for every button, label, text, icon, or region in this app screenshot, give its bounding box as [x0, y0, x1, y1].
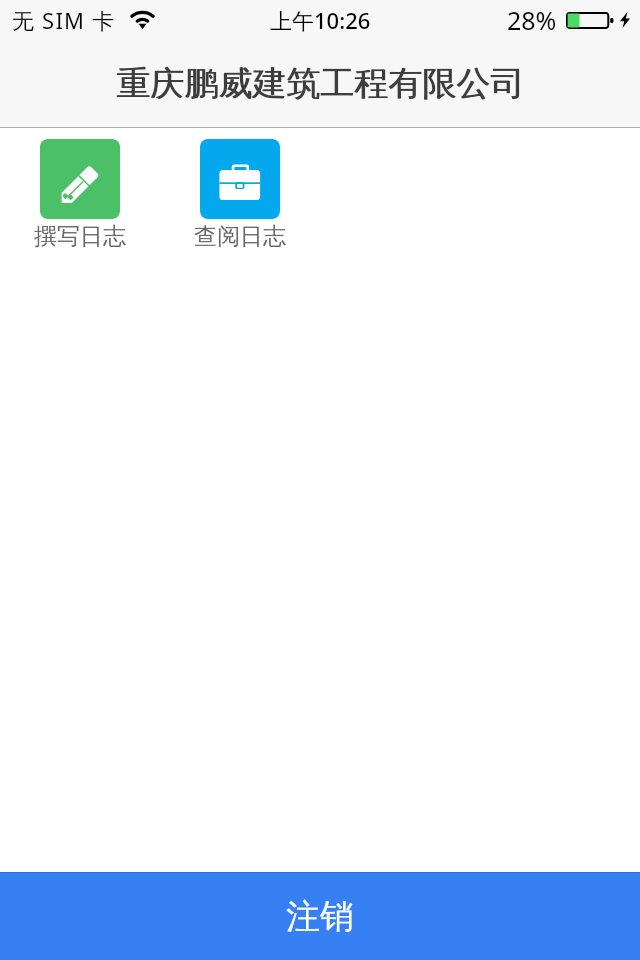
other: 撰写日志 — [40, 139, 120, 219]
staticText: 重庆鹏威建筑工程有限公司 — [116, 62, 524, 105]
staticText: 查阅日志 — [194, 222, 286, 251]
button[interactable]: 查阅日志 — [160, 139, 320, 251]
staticText: 撰写日志 — [34, 222, 126, 251]
staticText: 上午10:26 — [270, 5, 371, 35]
button[interactable]: 注销 — [0, 872, 640, 960]
other: 查阅日志 — [200, 139, 280, 219]
staticText: 注销 — [286, 895, 354, 938]
staticText: 28% — [507, 3, 557, 37]
staticText: 无 SIM 卡 — [12, 5, 116, 35]
button[interactable]: 撰写日志 — [0, 139, 160, 251]
staticText: 重庆鹏威建筑工程有限公司 — [117, 62, 525, 105]
